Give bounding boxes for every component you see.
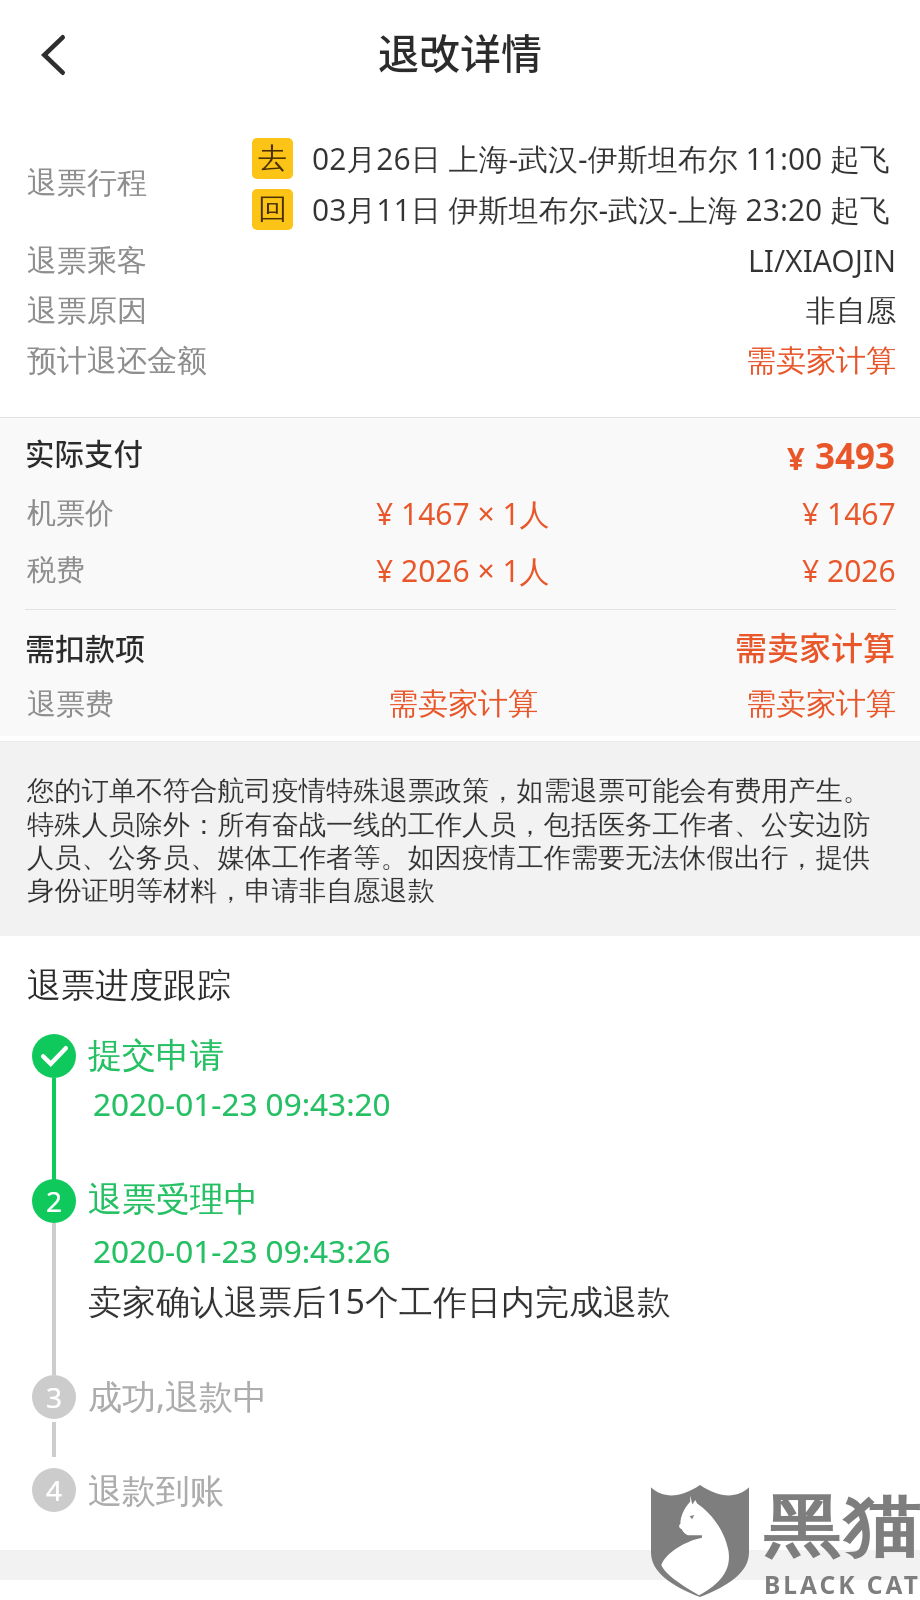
- staticText: 卖家确认退票后15个工作日内完成退款: [88, 1278, 671, 1324]
- staticText: 黑: [763, 1486, 840, 1570]
- staticText: 2: [46, 1182, 63, 1220]
- staticText: 您的订单不符合航司疫情特殊退票政策，如需退票可能会有费用产生。特殊人员除外：所有…: [27, 774, 872, 908]
- staticText: ¥: [787, 437, 805, 479]
- staticText: LI/XIAOJIN: [748, 240, 896, 281]
- staticText: 退票进度跟踪: [27, 964, 231, 1007]
- staticText: 退改详情: [378, 21, 542, 80]
- staticText: 退票行程: [27, 164, 147, 202]
- staticText: 去: [258, 140, 287, 177]
- staticText: 需扣款项: [25, 625, 145, 668]
- staticText: 需卖家计算: [735, 623, 896, 669]
- staticText: 机票价: [27, 495, 114, 532]
- staticText: 退票原因: [27, 292, 147, 330]
- staticText: 退款到账: [88, 1470, 224, 1513]
- staticText: 预计退还金额: [27, 342, 207, 380]
- staticText: 提交申请: [88, 1034, 224, 1077]
- staticText: 实际支付: [25, 431, 144, 474]
- staticText: 1467 × 1人: [401, 493, 550, 534]
- staticText: 1467: [827, 493, 896, 534]
- staticText: 03月11日 伊斯坦布尔-武汉-上海 23:20 起飞: [312, 189, 891, 230]
- staticText: 2020-01-23 09:43:26: [93, 1229, 391, 1272]
- staticText: 2026: [827, 550, 896, 591]
- staticText: 2026 × 1人: [401, 550, 550, 591]
- staticText: 税费: [27, 552, 85, 589]
- staticText: 3: [46, 1378, 63, 1416]
- staticText: ¥: [376, 493, 394, 534]
- staticText: ¥: [802, 493, 820, 534]
- staticText: 需卖家计算: [388, 685, 538, 723]
- staticText: 退票费: [27, 686, 114, 723]
- staticText: 非自愿: [806, 292, 896, 330]
- staticText: ¥: [376, 550, 394, 591]
- button[interactable]: Back: [7, 8, 100, 101]
- staticText: 2020-01-23 09:43:20: [93, 1082, 391, 1125]
- staticText: BLACK CAT: [764, 1568, 920, 1600]
- staticText: ¥: [802, 550, 820, 591]
- staticText: 回: [258, 191, 287, 228]
- staticText: 4: [46, 1471, 63, 1509]
- staticText: 退票受理中: [88, 1178, 258, 1221]
- staticText: 猫: [843, 1486, 920, 1570]
- staticText: 成功,退款中: [88, 1373, 268, 1419]
- staticText: 02月26日 上海-武汉-伊斯坦布尔 11:00 起飞: [312, 138, 891, 179]
- staticText: 退票乘客: [27, 242, 147, 280]
- staticText: 需卖家计算: [746, 342, 896, 380]
- staticText: 3493: [815, 432, 896, 480]
- staticText: 需卖家计算: [746, 685, 896, 723]
